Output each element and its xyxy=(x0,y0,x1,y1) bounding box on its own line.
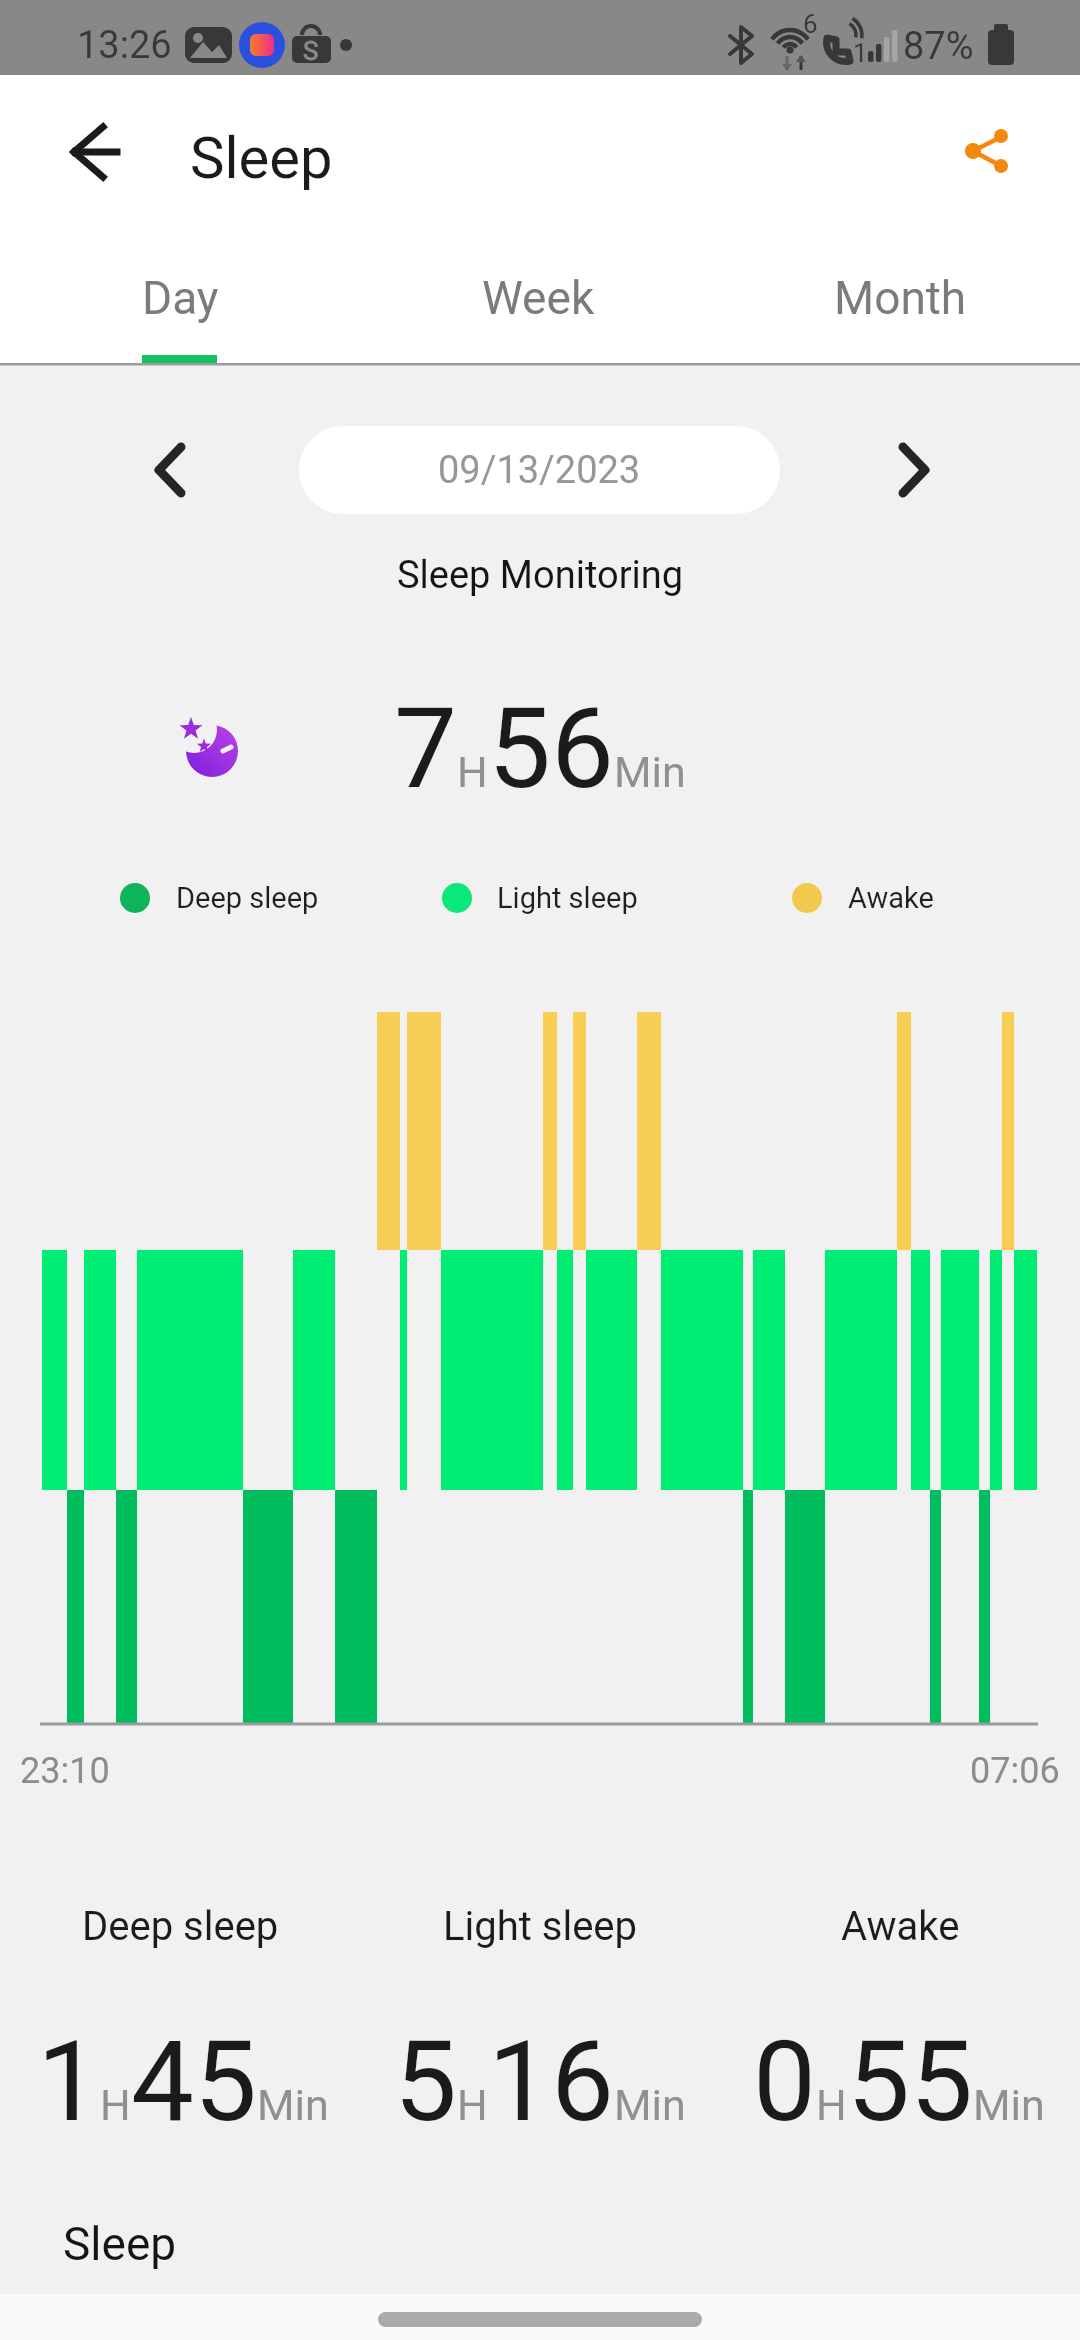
staticText: S xyxy=(303,36,319,66)
staticText: H xyxy=(457,747,488,797)
staticText: Day xyxy=(142,271,219,325)
staticText: 45 xyxy=(131,2016,257,2147)
staticText: 1 xyxy=(853,38,868,68)
staticText: Sleep xyxy=(190,124,333,192)
staticText: 7 xyxy=(394,683,457,814)
staticText: Sleep Monitoring xyxy=(397,553,684,598)
staticText: Light sleep xyxy=(497,881,638,915)
staticText: 87% xyxy=(903,24,974,69)
staticText: H xyxy=(457,2080,488,2130)
button[interactable] xyxy=(130,430,210,510)
staticText: Min xyxy=(973,2080,1045,2130)
staticText: 55 xyxy=(847,2016,973,2147)
staticText: Sleep xyxy=(63,2217,177,2271)
staticText: 07:06 xyxy=(970,1750,1060,1792)
button[interactable]: Month xyxy=(830,250,970,362)
button[interactable]: Day xyxy=(110,250,250,362)
staticText: Min xyxy=(614,747,686,797)
staticText: Min xyxy=(614,2080,686,2130)
staticText: 0 xyxy=(753,2016,816,2147)
staticText: 5 xyxy=(394,2016,457,2147)
staticText: Deep sleep xyxy=(176,881,319,915)
staticText: H xyxy=(100,2080,131,2130)
staticText: 6 xyxy=(803,9,818,39)
staticText: Min xyxy=(257,2080,329,2130)
button[interactable]: Week xyxy=(468,250,608,362)
staticText: Awake xyxy=(848,881,934,915)
staticText: Month xyxy=(834,271,967,325)
staticText: 56 xyxy=(488,683,614,814)
staticText: Deep sleep xyxy=(82,1903,279,1950)
staticText: 1 xyxy=(37,2016,100,2147)
button[interactable]: 09/13/2023 xyxy=(299,426,780,514)
button[interactable] xyxy=(950,120,1025,190)
staticText: 13:26 xyxy=(77,23,172,68)
staticText: H xyxy=(816,2080,847,2130)
button[interactable] xyxy=(875,430,955,510)
staticText: Light sleep xyxy=(443,1903,638,1950)
staticText: 09/13/2023 xyxy=(438,448,641,493)
staticText: Week xyxy=(482,271,595,325)
staticText: 23:10 xyxy=(20,1750,110,1792)
staticText: Awake xyxy=(841,1903,960,1950)
staticText: 16 xyxy=(488,2016,614,2147)
button[interactable] xyxy=(55,130,135,190)
